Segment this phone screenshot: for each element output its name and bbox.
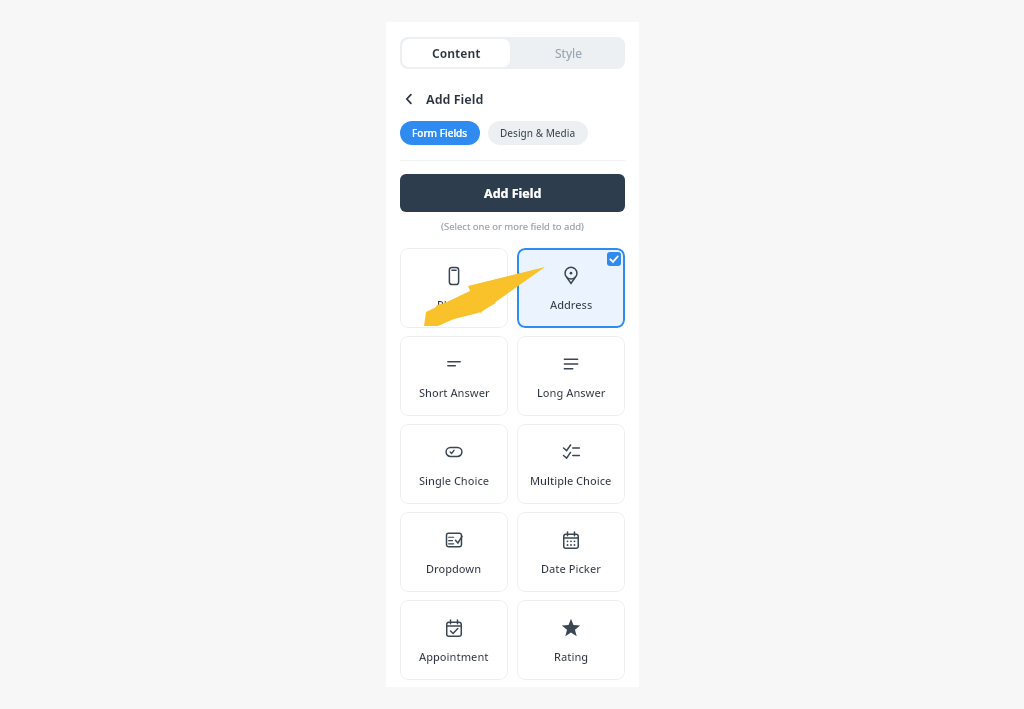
staticText: Long Answer — [537, 385, 606, 400]
staticText: Appointment — [419, 649, 489, 664]
button[interactable]: Style — [512, 37, 625, 69]
staticText: Rating — [554, 649, 589, 664]
button[interactable]: Back — [400, 90, 484, 108]
button[interactable]: Appointment — [400, 600, 508, 680]
button[interactable]: Single Choice — [400, 424, 508, 504]
staticText: Dropdown — [426, 561, 482, 576]
button[interactable]: Address — [517, 248, 625, 328]
button[interactable]: Add Field — [400, 174, 625, 212]
staticText: Add Field — [426, 91, 484, 108]
button[interactable]: Multiple Choice — [517, 424, 625, 504]
staticText: Form Fields — [412, 126, 468, 140]
button[interactable]: Long Answer — [517, 336, 625, 416]
staticText: Add Field — [484, 185, 542, 202]
button[interactable]: Phone — [400, 248, 508, 328]
staticText: Content — [432, 45, 481, 61]
staticText: Phone — [437, 297, 471, 312]
button[interactable]: Short Answer — [400, 336, 508, 416]
staticText: Multiple Choice — [530, 473, 612, 488]
staticText: Style — [555, 45, 582, 61]
staticText: Single Choice — [419, 473, 490, 488]
staticText: Address — [550, 297, 593, 312]
button[interactable]: Dropdown — [400, 512, 508, 592]
staticText: Design & Media — [500, 126, 576, 140]
button[interactable]: Form Fields — [412, 121, 468, 145]
staticText: (Select one or more field to add) — [386, 220, 639, 233]
button[interactable]: Rating — [517, 600, 625, 680]
staticText: Date Picker — [541, 561, 601, 576]
button[interactable]: Date Picker — [517, 512, 625, 592]
button[interactable]: Content — [402, 39, 510, 67]
button[interactable]: Design & Media — [500, 121, 576, 145]
other: Back — [400, 90, 418, 108]
staticText: Short Answer — [419, 385, 490, 400]
